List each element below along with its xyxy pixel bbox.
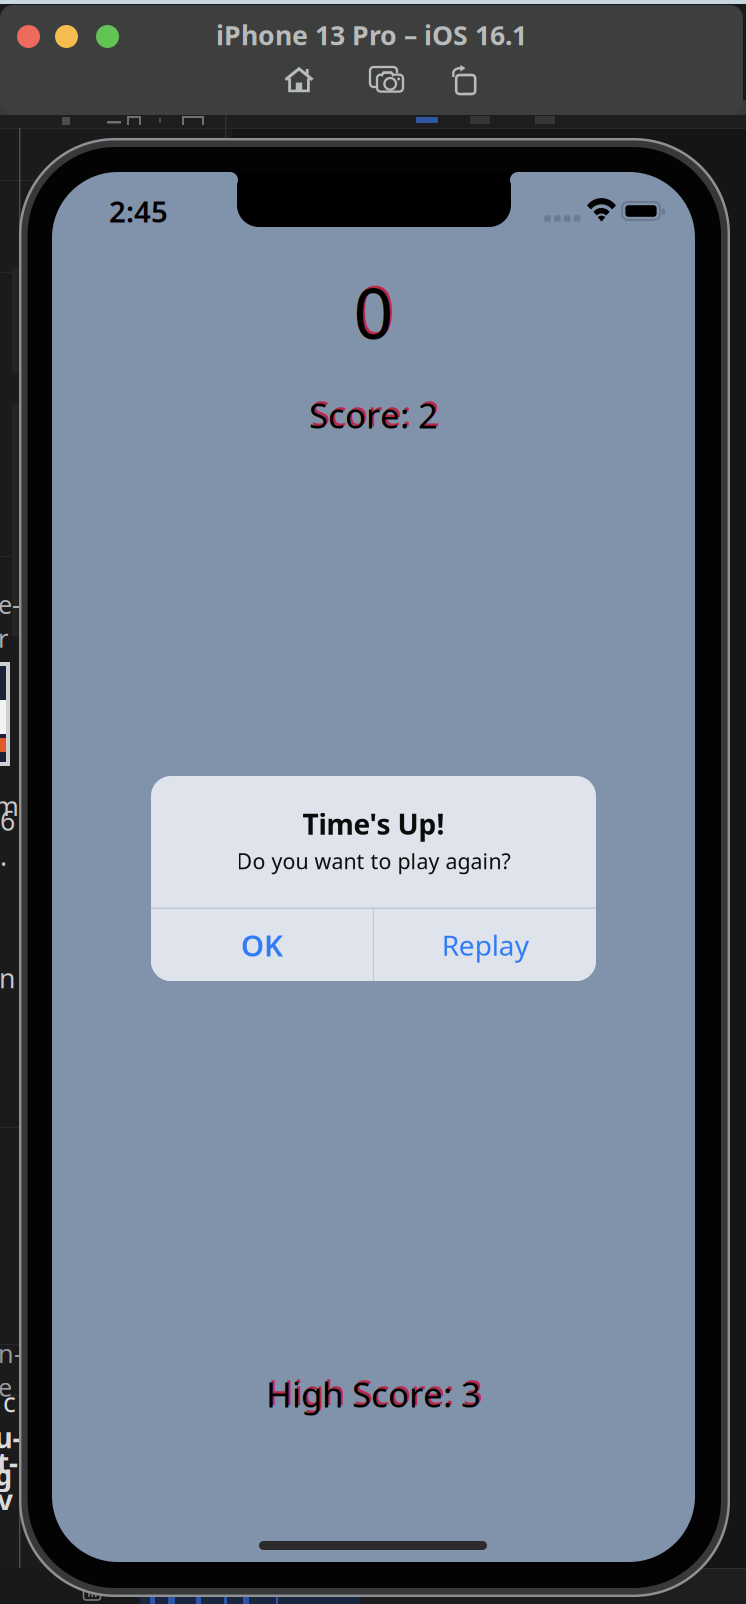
- staticText: 6.: [0, 803, 15, 873]
- button[interactable]: Home: [284, 66, 314, 93]
- staticText: iPhone 13 Pro – iOS 16.1: [216, 17, 527, 53]
- button[interactable]: OK: [151, 909, 373, 981]
- button[interactable]: Close window: [17, 25, 40, 48]
- staticText: 0: [356, 264, 396, 356]
- staticText: ne: [0, 1336, 22, 1404]
- button[interactable]: Rotate: [452, 65, 475, 92]
- staticText: Replay: [442, 926, 529, 964]
- button[interactable]: Minimize window: [55, 25, 78, 48]
- staticText: Score: 2: [311, 390, 440, 436]
- staticText: mi: [0, 788, 26, 824]
- staticText: High Score: 3: [266, 1371, 481, 1417]
- staticText: Do you want to play again?: [236, 847, 510, 875]
- staticText: High Score: 3: [268, 1369, 483, 1415]
- staticText: 0: [353, 266, 393, 358]
- staticText: Time's Up!: [302, 805, 444, 843]
- staticText: er: [0, 587, 20, 655]
- button[interactable]: Replay: [374, 909, 596, 981]
- staticText: n: [0, 960, 15, 996]
- staticText: 2:45: [109, 191, 168, 230]
- staticText: c: [3, 1384, 16, 1420]
- button[interactable]: Zoom window: [96, 25, 119, 48]
- staticText: ug: [0, 1419, 21, 1493]
- staticText: Score: 2: [309, 392, 438, 438]
- staticText: tv: [0, 1444, 18, 1518]
- staticText: OK: [241, 925, 283, 964]
- button[interactable]: Screenshot: [370, 65, 404, 92]
